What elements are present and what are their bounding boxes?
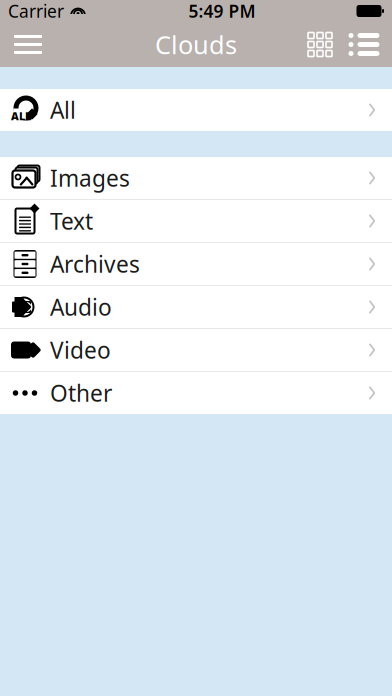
button[interactable]: Archives	[0, 243, 392, 285]
button[interactable]: Images	[0, 157, 392, 199]
button[interactable]: Video	[0, 329, 392, 371]
button[interactable]: Audio	[0, 286, 392, 328]
button[interactable]: Other	[0, 372, 392, 414]
staticText: Images	[50, 163, 130, 193]
staticText: Clouds	[155, 28, 237, 61]
staticText: All	[50, 95, 76, 125]
button[interactable]: ALL	[0, 89, 392, 131]
staticText: Archives	[50, 249, 140, 279]
button[interactable]: Text	[0, 200, 392, 242]
staticText: Text	[50, 206, 93, 236]
button[interactable]: Grid view	[298, 22, 342, 66]
button[interactable]: Menu	[6, 22, 50, 66]
staticText: Video	[50, 335, 111, 365]
staticText: 5:49 PM	[188, 0, 255, 22]
button[interactable]: List view	[342, 22, 386, 66]
staticText: ALL	[11, 109, 31, 123]
staticText: Carrier	[8, 0, 64, 22]
staticText: Audio	[50, 292, 112, 322]
staticText: Other	[50, 378, 112, 408]
